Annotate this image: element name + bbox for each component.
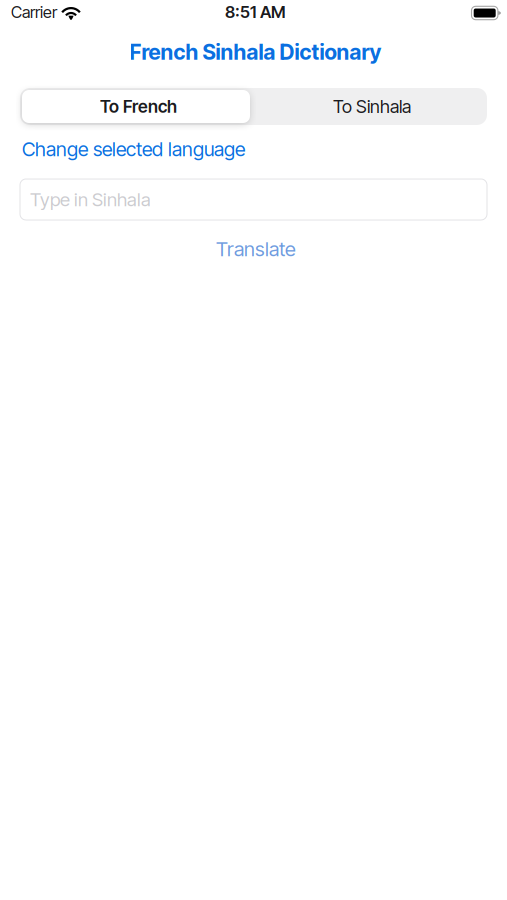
button[interactable]: Change selected language: [22, 136, 262, 162]
staticText: Change selected language: [22, 137, 245, 161]
staticText: French Sinhala Dictionary: [129, 39, 381, 65]
staticText: Carrier: [11, 2, 57, 22]
staticText: Type in Sinhala: [30, 188, 151, 211]
button[interactable]: To Sinhala: [253, 90, 485, 123]
textField[interactable]: Type in Sinhala: [20, 179, 487, 220]
button[interactable]: Type in Sinhala: [20, 179, 487, 220]
button[interactable]: To French: [22, 90, 250, 123]
staticText: 8:51 AM: [225, 2, 286, 22]
staticText: To Sinhala: [333, 96, 411, 117]
button[interactable]: Translate: [191, 235, 321, 263]
staticText: Translate: [216, 237, 296, 261]
staticText: To French: [100, 96, 177, 117]
